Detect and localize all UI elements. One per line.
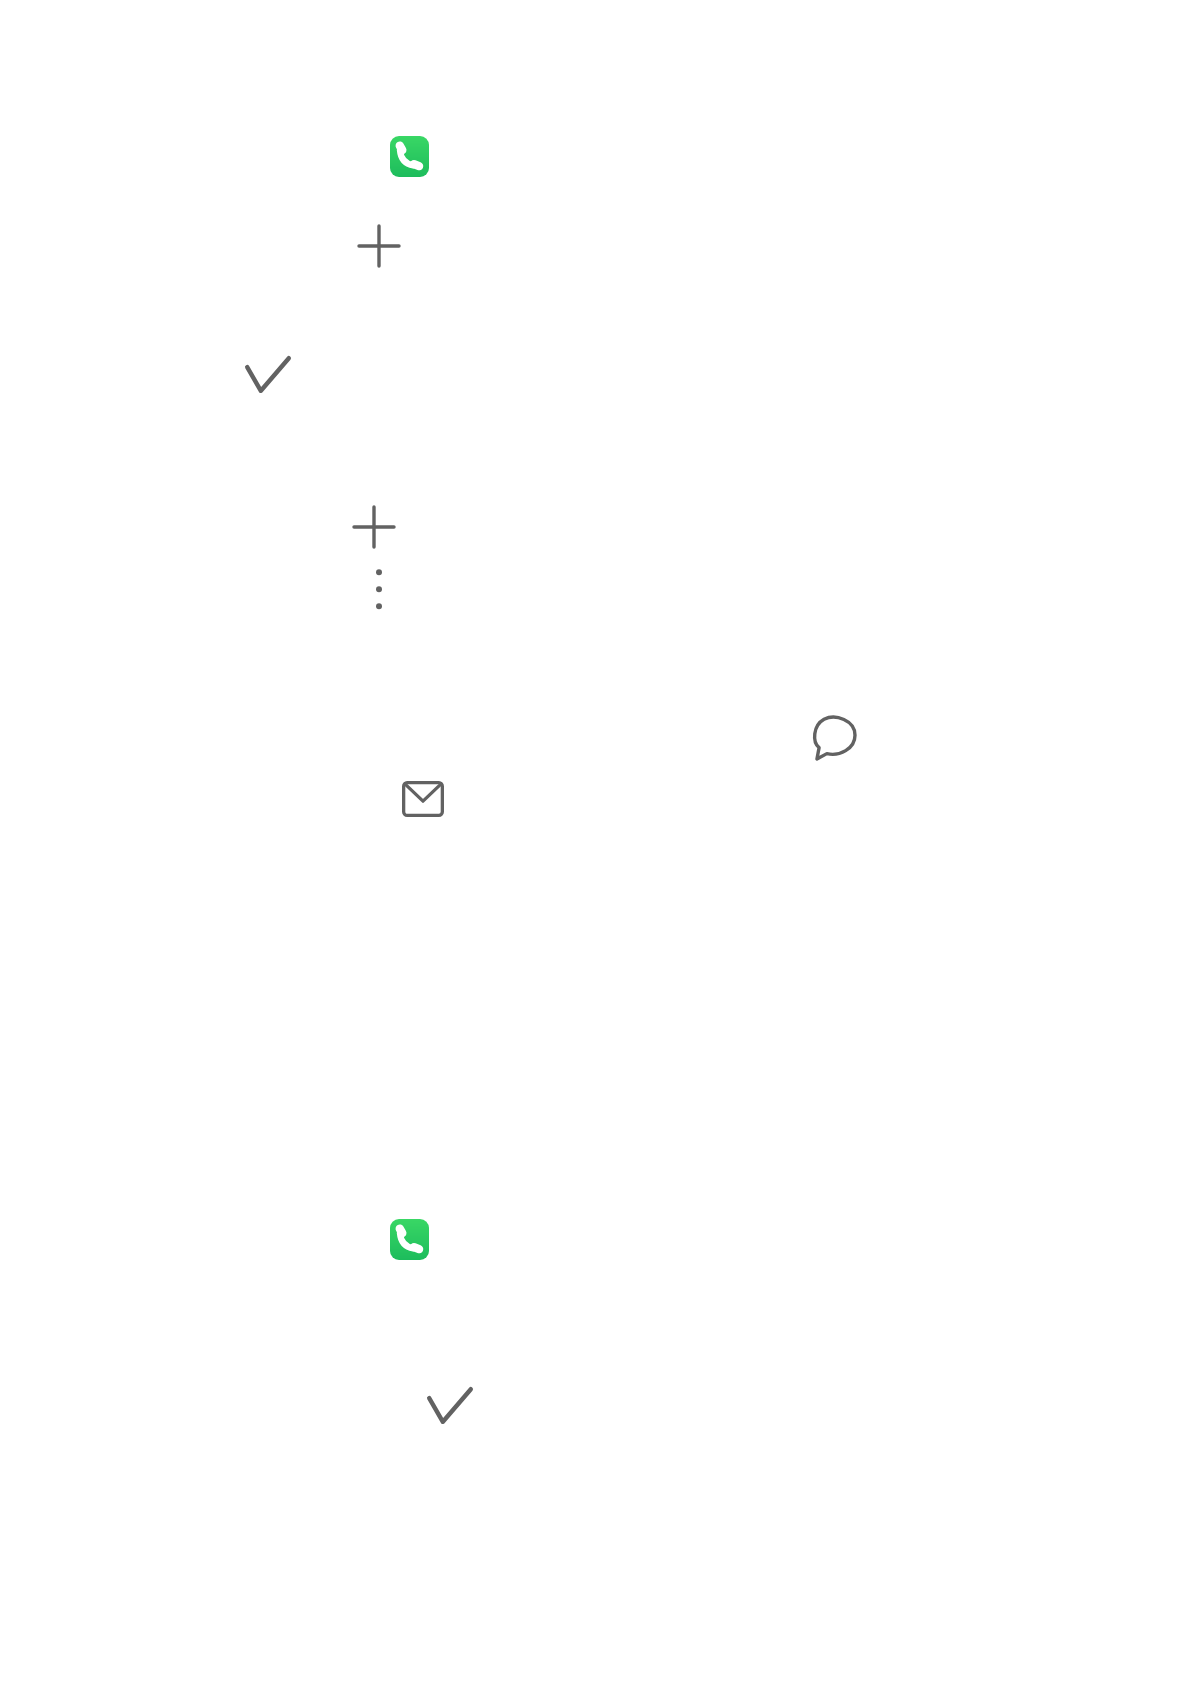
- button[interactable]: Verified: [245, 356, 291, 393]
- button[interactable]: Add number: [352, 505, 396, 549]
- button[interactable]: Saved: [427, 1387, 473, 1424]
- button[interactable]: More options: [372, 568, 386, 612]
- button[interactable]: Send message: [812, 716, 855, 759]
- button[interactable]: Send e-mail: [402, 781, 444, 817]
- button[interactable]: Add contact: [357, 224, 401, 268]
- button[interactable]: Call: [390, 1219, 429, 1260]
- button[interactable]: Open Phone app: [390, 136, 429, 177]
